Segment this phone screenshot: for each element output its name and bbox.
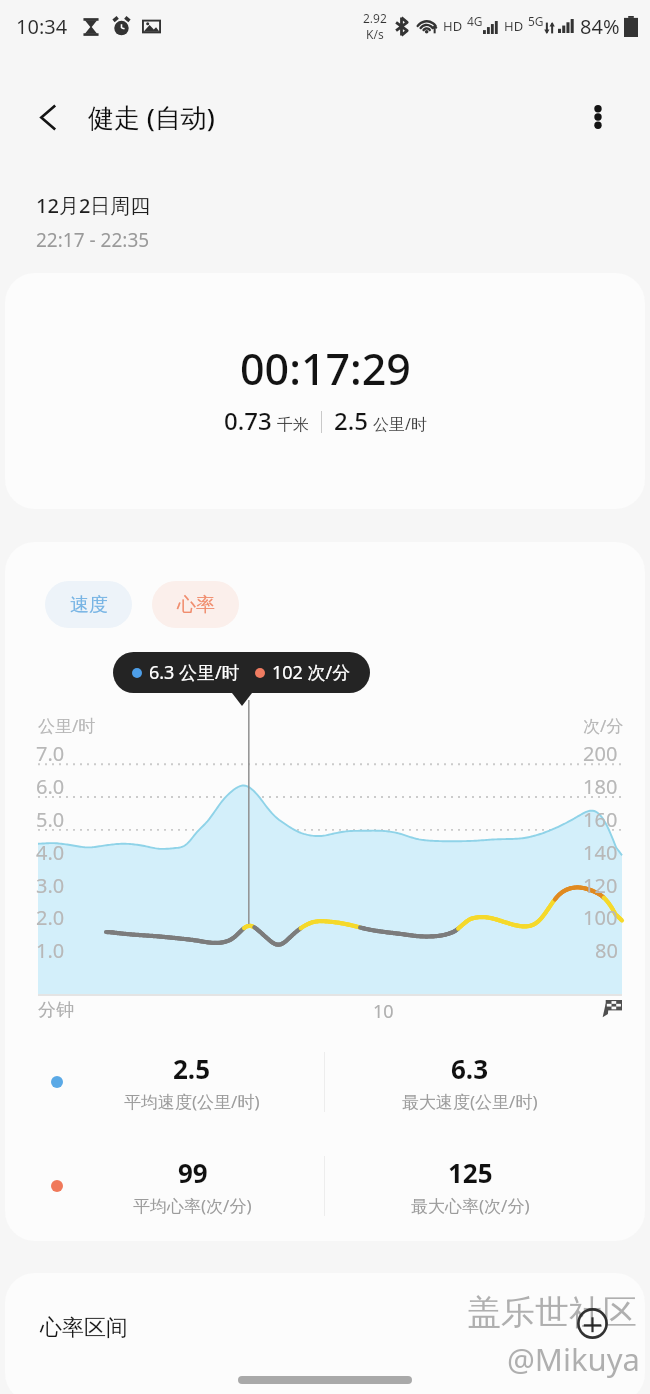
staticText: @Mikuya (507, 1338, 640, 1380)
staticText: 99 (178, 1155, 208, 1190)
staticText: 心率区间 (40, 1314, 128, 1342)
staticText: 2.0 (36, 904, 65, 931)
staticText: 160 (583, 806, 618, 833)
staticText: 平均速度(公里/时) (124, 1090, 260, 1113)
button[interactable]: 00:17:29 (5, 273, 645, 509)
staticText: 最大速度(公里/时) (402, 1090, 538, 1113)
button[interactable]: 心率区间 (5, 1273, 645, 1394)
staticText: 0.73 (224, 404, 272, 437)
staticText: 80 (595, 937, 618, 964)
button[interactable]: 6.3 (310, 1037, 630, 1127)
staticText: 12月2日周四 (36, 192, 151, 219)
staticText: 公里/时 (373, 413, 427, 435)
staticText: 2.5 (173, 1051, 211, 1086)
staticText: 盖乐世社区 (467, 1291, 637, 1334)
staticText: 180 (583, 773, 618, 800)
button[interactable]: Back (0, 74, 80, 160)
staticText: 4G (467, 13, 483, 29)
staticText: 7.0 (36, 740, 65, 767)
staticText: 3.0 (36, 872, 65, 899)
staticText: 千米 (277, 415, 309, 435)
staticText: 22:17 - 22:35 (36, 227, 150, 253)
staticText: 125 (448, 1155, 493, 1190)
staticText: 心率 (177, 593, 215, 617)
button[interactable]: More options (580, 74, 650, 160)
staticText: 1.0 (36, 937, 65, 964)
staticText: 84% (580, 13, 620, 40)
button[interactable]: 心率 (152, 581, 239, 628)
button[interactable]: 99 (32, 1141, 352, 1231)
staticText: K/s (366, 26, 384, 42)
staticText: HD (504, 17, 524, 35)
staticText: 次/分 (583, 714, 624, 737)
staticText: 120 (583, 872, 618, 899)
staticText: 5G (528, 13, 544, 29)
staticText: 6.0 (36, 773, 65, 800)
staticText: 102 次/分 (272, 660, 351, 685)
staticText: 速度 (70, 593, 108, 617)
staticText: 公里/时 (38, 714, 96, 737)
staticText: 健走 (自动) (88, 99, 215, 135)
staticText: 10:34 (16, 13, 68, 40)
staticText: 00:17:29 (240, 339, 411, 398)
staticText: 2.5 (334, 404, 368, 437)
staticText: 6.3 公里/时 (149, 660, 240, 685)
staticText: 5.0 (36, 806, 65, 833)
staticText: 6.3 (451, 1051, 489, 1086)
staticText: 分钟 (38, 999, 74, 1022)
staticText: 平均心率(次/分) (133, 1194, 252, 1217)
staticText: HD (443, 17, 463, 35)
button[interactable]: 2.5 (32, 1037, 352, 1127)
staticText: 4.0 (36, 839, 65, 866)
button[interactable]: 125 (310, 1141, 630, 1231)
button[interactable]: 6.3 公里/时 (113, 652, 370, 693)
staticText: 最大心率(次/分) (411, 1194, 530, 1217)
staticText: 10 (373, 999, 394, 1024)
staticText: 100 (583, 904, 618, 931)
staticText: 140 (583, 839, 618, 866)
button[interactable]: 速度 (45, 581, 132, 628)
staticText: 2.92 (363, 10, 387, 26)
staticText: 200 (583, 740, 618, 767)
